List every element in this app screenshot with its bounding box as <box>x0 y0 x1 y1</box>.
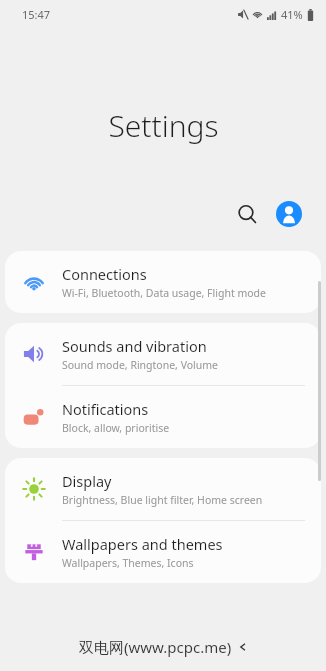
staticText: 41% <box>281 7 303 22</box>
staticText: Wi-Fi, Bluetooth, Data usage, Flight mod… <box>62 286 267 300</box>
button[interactable]: Notifications <box>5 386 321 448</box>
staticText: Brightness, Blue light filter, Home scre… <box>62 493 263 507</box>
staticText: 双电网(www.pcpc.me) <box>79 637 232 657</box>
staticText: Notifications <box>62 399 149 419</box>
staticText: Sound mode, Ringtone, Volume <box>62 358 219 372</box>
button[interactable]: Wallpapers and themes <box>5 521 321 583</box>
staticText: Connections <box>62 264 147 284</box>
staticText: Wallpapers, Themes, Icons <box>62 556 194 570</box>
staticText: 15:47 <box>22 7 51 22</box>
button[interactable]: Connections <box>5 251 321 313</box>
staticText: Sounds and vibration <box>62 336 207 356</box>
button[interactable]: Display <box>5 458 321 520</box>
staticText: Settings <box>108 105 219 146</box>
staticText: Wallpapers and themes <box>62 534 223 554</box>
button[interactable]: Sounds and vibration <box>5 323 321 385</box>
staticText: Display <box>62 471 112 491</box>
staticText: Block, allow, prioritise <box>62 421 170 435</box>
button[interactable]: Search <box>227 194 267 234</box>
button[interactable]: Account <box>269 194 309 234</box>
